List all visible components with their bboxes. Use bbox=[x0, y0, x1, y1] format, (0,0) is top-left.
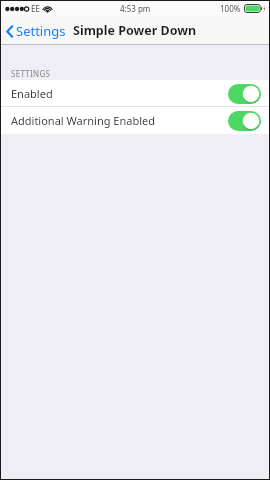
staticText: Additional Warning Enabled bbox=[11, 113, 155, 128]
staticText: Settings bbox=[16, 22, 66, 40]
button[interactable]: Toggle bbox=[228, 111, 261, 131]
staticText: EE bbox=[31, 3, 40, 14]
button[interactable]: Settings bbox=[1, 18, 72, 44]
staticText: Simple Power Down bbox=[73, 22, 197, 39]
staticText: 100% bbox=[220, 3, 241, 14]
staticText: SETTINGS bbox=[11, 68, 51, 79]
staticText: 4:53 pm bbox=[120, 3, 151, 14]
staticText: Enabled bbox=[11, 86, 53, 101]
button[interactable]: Toggle bbox=[228, 84, 261, 104]
button[interactable]: Additional Warning Enabled bbox=[1, 107, 269, 134]
button[interactable]: Enabled bbox=[1, 80, 269, 107]
